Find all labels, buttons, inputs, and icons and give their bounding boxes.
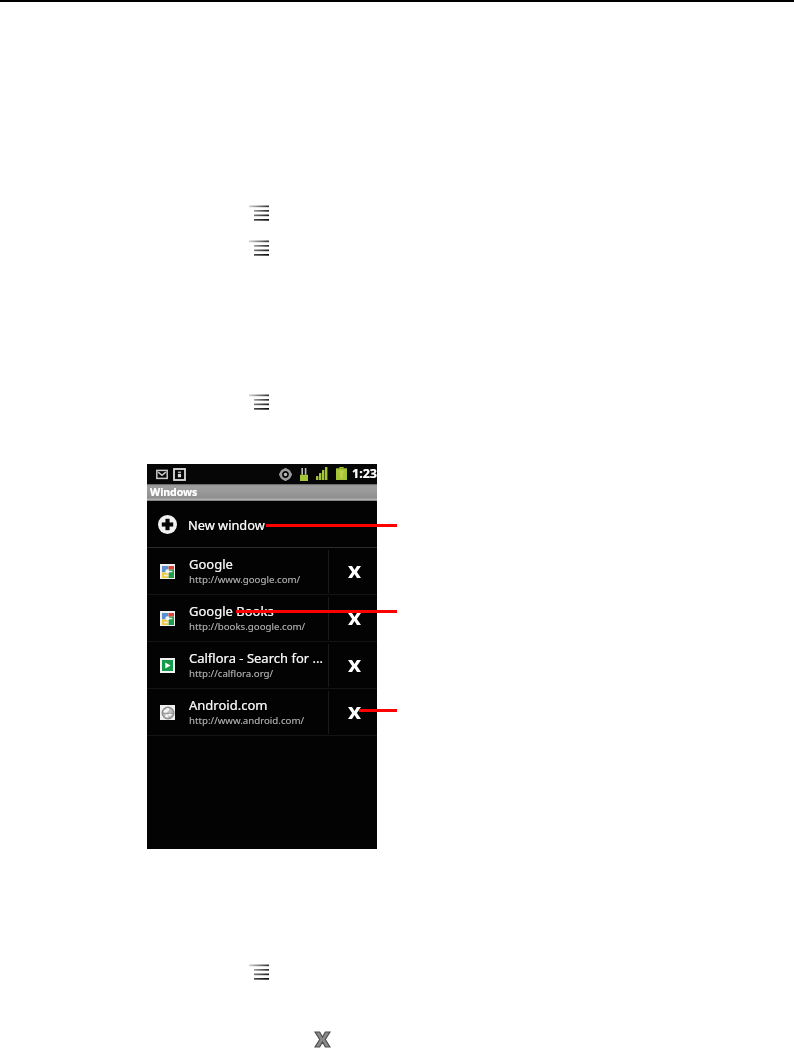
staticText: Google Books (189, 602, 274, 620)
button[interactable]: Google Books (147, 595, 328, 642)
staticText: Calflora - Search for ... (189, 649, 323, 667)
button[interactable]: New window (147, 501, 377, 548)
staticText: http://books.google.com/ (189, 620, 306, 633)
button[interactable]: Close window (329, 642, 377, 689)
button[interactable]: Android.com (147, 689, 328, 736)
button[interactable]: Close window (329, 689, 377, 736)
staticText: 1:23 (352, 465, 377, 482)
staticText: Windows (150, 485, 198, 499)
staticText: http://www.android.com/ (189, 714, 305, 727)
staticText: Google (189, 555, 233, 573)
button[interactable]: Close window (329, 595, 377, 642)
staticText: http://www.google.com/ (189, 573, 301, 586)
staticText: Android.com (189, 696, 268, 714)
staticText: New window (188, 516, 265, 533)
button[interactable]: Close window (329, 548, 377, 595)
staticText: http://calflora.org/ (189, 667, 274, 680)
button[interactable]: Calflora - Search for ... (147, 642, 328, 689)
button[interactable]: Google (147, 548, 328, 595)
